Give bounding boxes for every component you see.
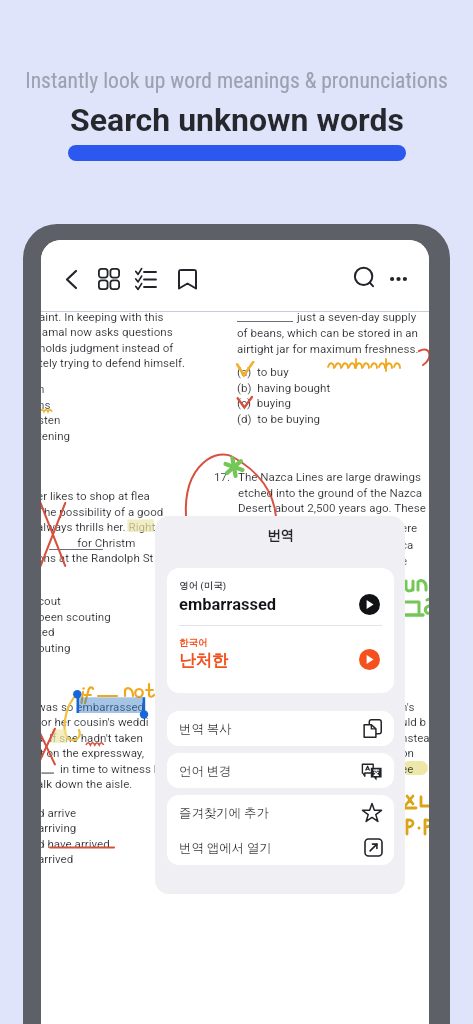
staticText: The possibility of a good [41,505,164,519]
staticText: 난처한 [179,650,229,671]
staticText: for Christm [41,536,136,550]
staticText: d arrive [41,806,77,820]
staticText: 언어 변경 [179,763,232,779]
staticText: tely trying to defend himself. [41,356,186,370]
staticText: of beans, which can be stored in an [237,326,418,340]
staticText: on [401,746,415,760]
button[interactable]: 번역 복사 [167,711,394,746]
staticText: (c) buying [237,396,291,410]
staticText: 한국어 [179,637,208,649]
staticText: 즐겨찾기에 추가 [179,805,269,821]
staticText: d have arrived [41,837,110,851]
button[interactable]: 번역 앱에서 열기 [167,830,394,865]
staticText: (a) to buy [237,365,289,379]
staticText: n's [401,700,415,714]
staticText: tening [41,429,71,443]
staticText: aint. In keeping with this [41,310,164,324]
button[interactable]: 영어 (미국) [167,568,394,693]
button[interactable]: 즐겨찾기에 추가 [167,795,394,830]
staticText: 17. [214,470,231,484]
staticText: a. If she hadn't taken [41,731,143,745]
button[interactable]: Grid view [93,263,125,295]
staticText: ons at the Randolph St [41,551,154,565]
staticText: holds judgment instead of [41,341,174,355]
staticText: outing [41,641,71,655]
staticText: sten [41,413,61,427]
button[interactable]: Checklist [130,263,162,295]
staticText: was so embarrassed [41,700,145,714]
staticText: ca [401,538,414,552]
button[interactable]: Bookmark [171,263,203,295]
staticText: for her cousin's weddi [41,715,149,729]
staticText: nstea [401,731,429,745]
staticText: arriving [41,821,77,835]
staticText: embarrassed [179,595,277,614]
staticText: airtight jar for maximum freshness. [237,342,419,356]
button[interactable]: 언어 변경 [167,753,394,788]
staticText: ted [41,625,55,639]
staticText: cout [41,594,61,608]
staticText: Desert about 2,500 years ago. These [238,501,426,515]
staticText: it on the expressway, [41,746,145,760]
staticText: lamal now asks questions [41,325,173,339]
button[interactable]: Search [349,262,381,294]
staticText: ere [401,521,418,535]
staticText: ns [41,398,51,412]
staticText: Instantly look up word meanings & pronun… [25,68,448,93]
staticText: e [401,554,408,568]
staticText: just a seven-day supply [297,310,417,324]
staticText: (d) to be buying [237,412,321,426]
staticText: The Nazca Lines are large drawings [238,470,421,484]
staticText: alk down the aisle. [41,777,133,791]
staticText: always thrills her. Right [41,520,156,534]
staticText: n [41,382,45,396]
staticText: in time to witness h [41,762,161,776]
staticText: Search unknown words [70,101,404,139]
button[interactable]: Back [55,263,87,295]
staticText: etched into the ground of the Nazca [238,486,423,500]
button[interactable]: More options [382,263,414,295]
staticText: 번역 복사 [179,721,232,737]
staticText: ee [401,762,414,776]
staticText: uld b [401,715,427,729]
staticText: er likes to shop at flea [41,489,150,503]
staticText: 번역 [267,527,294,544]
button[interactable]: Play pronunciation [359,594,380,615]
button[interactable]: Play pronunciation [359,649,380,670]
staticText: (b) having bought [237,381,331,395]
staticText: 번역 앱에서 열기 [179,840,272,856]
staticText: 영어 (미국) [179,580,227,592]
staticText: been scouting [41,610,111,624]
staticText: arrived [41,852,74,866]
